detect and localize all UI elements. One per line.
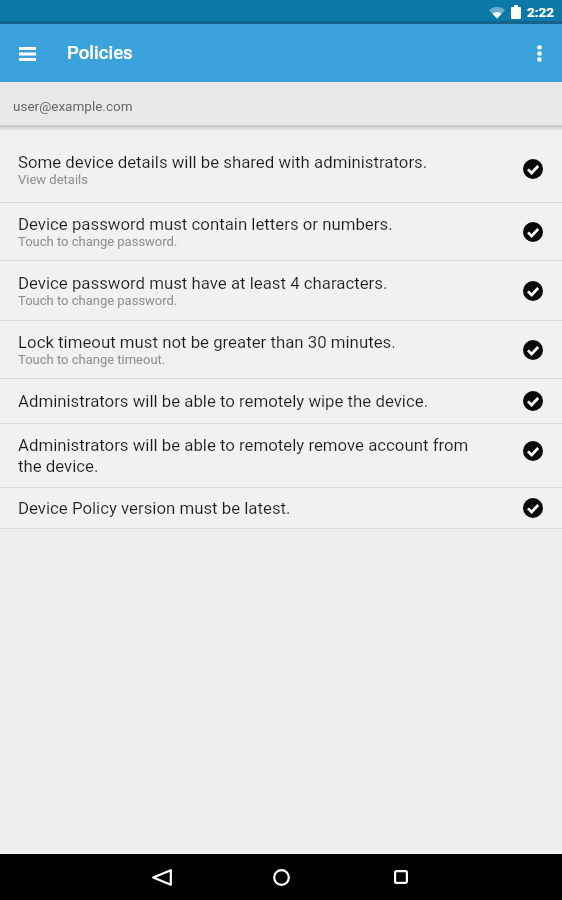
staticText: Touch to change password.: [18, 293, 178, 308]
staticText: 2:22: [527, 4, 555, 20]
staticText: Device password must contain letters or …: [18, 214, 393, 234]
button[interactable]: Some device details will be shared with …: [0, 136, 562, 202]
button[interactable]: [525, 34, 553, 72]
button[interactable]: Lock timeout must not be greater than 30…: [0, 321, 562, 378]
button[interactable]: [251, 854, 311, 900]
staticText: View details: [18, 172, 88, 187]
staticText: Some device details will be shared with …: [18, 152, 428, 172]
button[interactable]: Device Policy version must be latest.: [0, 488, 562, 528]
staticText: Touch to change password.: [18, 234, 178, 249]
staticText: Touch to change timeout.: [18, 352, 166, 367]
staticText: Administrators will be able to remotely …: [18, 391, 429, 411]
button[interactable]: [8, 35, 46, 73]
button[interactable]: Administrators will be able to remotely …: [0, 424, 562, 487]
button[interactable]: user@example.com: [0, 82, 562, 125]
staticText: Device Policy version must be latest.: [18, 498, 291, 518]
staticText: Administrators will be able to remotely …: [18, 435, 469, 477]
staticText: user@example.com: [13, 98, 133, 114]
staticText: Policies: [67, 42, 133, 64]
staticText: Lock timeout must not be greater than 30…: [18, 332, 396, 352]
button[interactable]: Device password must contain letters or …: [0, 203, 562, 260]
button[interactable]: Administrators will be able to remotely …: [0, 379, 562, 423]
staticText: Device password must have at least 4 cha…: [18, 273, 388, 293]
button[interactable]: Device password must have at least 4 cha…: [0, 261, 562, 320]
button[interactable]: [371, 854, 431, 900]
button[interactable]: [132, 854, 192, 900]
